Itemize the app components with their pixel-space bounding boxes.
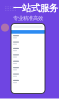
staticText: 专业精准高效 <box>13 15 43 22</box>
staticText: 一站式服务 <box>13 2 58 14</box>
